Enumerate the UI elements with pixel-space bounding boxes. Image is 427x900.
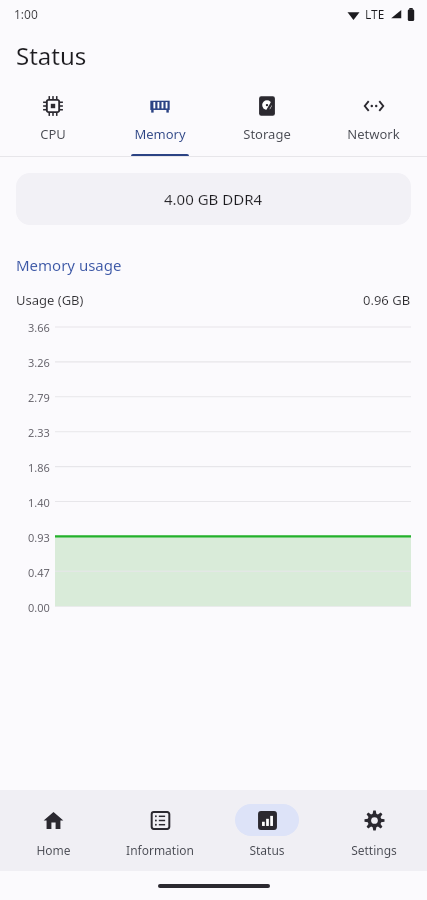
- staticText: Status: [16, 39, 87, 72]
- staticText: Storage: [243, 125, 291, 143]
- staticText: LTE: [365, 6, 385, 22]
- staticText: 3.26: [28, 355, 50, 370]
- staticText: 1:00: [14, 6, 38, 22]
- staticText: CPU: [40, 125, 66, 143]
- staticText: Memory usage: [16, 255, 427, 275]
- button[interactable]: Status: [213, 790, 320, 871]
- staticText: Settings: [351, 842, 397, 858]
- button[interactable]: Home: [0, 790, 106, 871]
- staticText: 0.47: [28, 565, 50, 580]
- staticText: 4.00 GB DDR4: [164, 189, 263, 209]
- button[interactable]: CPU: [0, 82, 106, 157]
- staticText: 1.40: [28, 495, 50, 510]
- button[interactable]: 4.00 GB DDR4: [16, 173, 411, 225]
- staticText: 2.33: [28, 425, 50, 440]
- staticText: 2.79: [28, 390, 50, 405]
- button[interactable]: Settings: [320, 790, 427, 871]
- staticText: Home: [36, 842, 71, 858]
- button[interactable]: Network: [320, 82, 427, 157]
- staticText: Usage (GB): [16, 291, 84, 309]
- staticText: 0.00: [28, 600, 50, 615]
- button[interactable]: Information: [106, 790, 213, 871]
- staticText: 3.66: [28, 320, 50, 335]
- staticText: 0.96 GB: [363, 291, 411, 309]
- staticText: Network: [347, 125, 400, 143]
- staticText: 1.86: [28, 460, 50, 475]
- staticText: Memory: [134, 125, 186, 143]
- staticText: Status: [249, 842, 285, 858]
- button[interactable]: Memory: [106, 82, 213, 157]
- button[interactable]: Storage: [213, 82, 320, 157]
- staticText: 0.93: [28, 530, 50, 545]
- staticText: Information: [126, 842, 194, 858]
